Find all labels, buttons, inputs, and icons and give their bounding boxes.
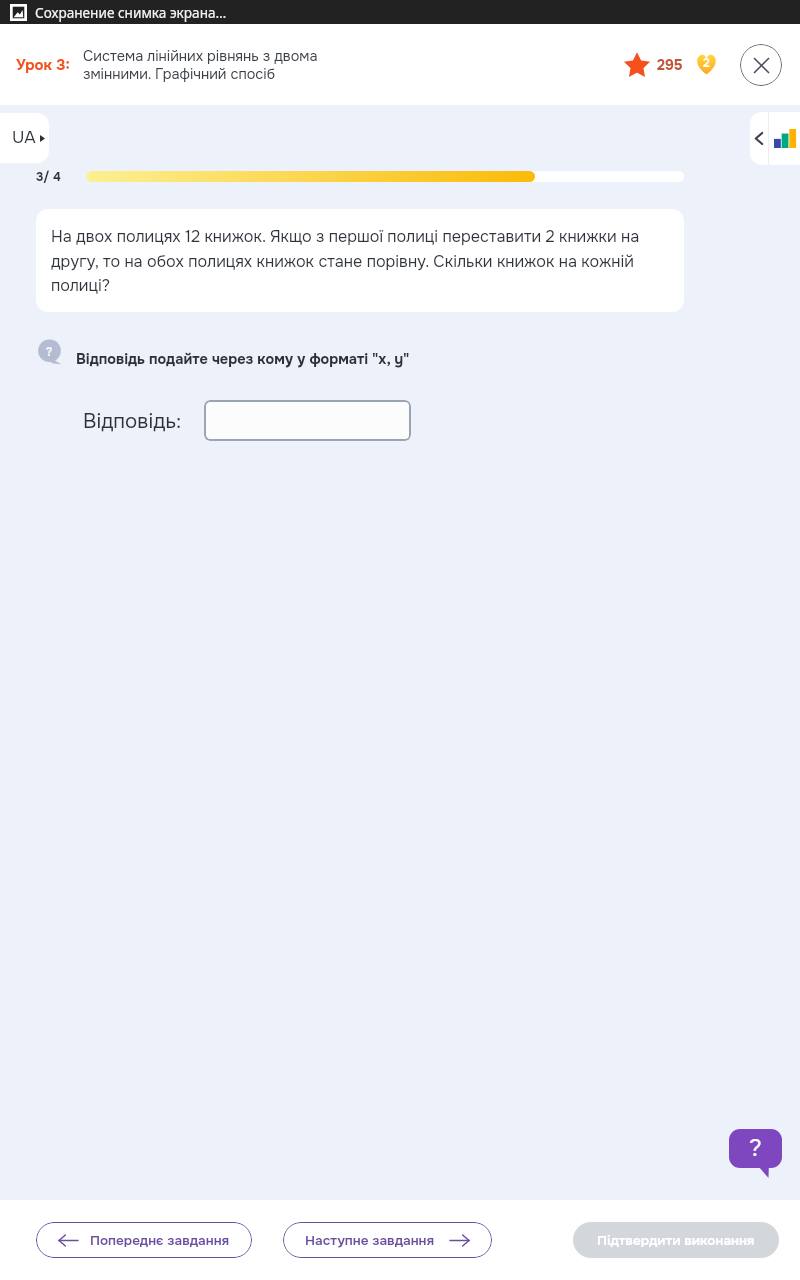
button[interactable]: Наступне завдання [283,1222,492,1258]
staticText: ? [46,344,53,359]
button[interactable]: Close [740,44,782,86]
button[interactable]: Підтвердити виконання [573,1222,779,1258]
staticText: На двох полицях 12 книжок. Якщо з першої… [51,226,669,296]
staticText: 2 [703,55,710,70]
staticText: 295 [657,56,683,74]
button[interactable]: Попереднє завдання [36,1222,252,1258]
staticText: Наступне завдання [305,1232,435,1249]
staticText: Відповідь подайте через кому у форматі "… [76,350,410,368]
staticText: Урок 3: [16,55,70,74]
button[interactable]: Collapse panel [750,112,768,165]
staticText: Система лінійних рівнянь з двома змінним… [83,47,318,83]
staticText: 3/ 4 [36,169,61,184]
staticText: ? [749,1132,762,1164]
staticText: Попереднє завдання [90,1232,230,1249]
button[interactable]: Statistics [769,112,800,165]
staticText: Відповідь: [83,408,182,434]
staticText: UA [12,127,36,149]
staticText: Підтвердити виконання [597,1232,755,1249]
staticText: Сохранение снимка экрана… [35,3,227,22]
button[interactable]: UA [0,113,49,163]
button[interactable]: Help [729,1129,782,1168]
button[interactable] [204,400,411,441]
